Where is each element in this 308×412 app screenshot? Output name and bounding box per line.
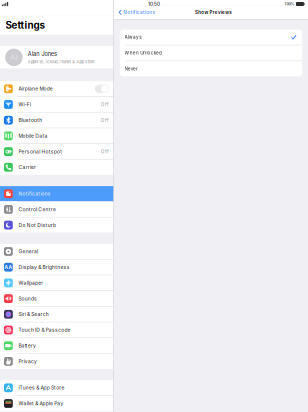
staticText: Carrier [18, 164, 36, 170]
staticText: Privacy [18, 358, 37, 364]
staticText: Off [101, 117, 109, 123]
staticText: Control Centre [18, 206, 56, 212]
staticText: Settings [5, 19, 45, 31]
button[interactable]: Notifications [114, 6, 160, 19]
button[interactable]: Control Centre [0, 202, 113, 217]
staticText: Mobile Data [18, 133, 48, 139]
button[interactable]: Sounds [0, 291, 113, 306]
staticText: Personal Hotspot [18, 149, 62, 155]
staticText: Off [101, 149, 109, 154]
staticText: Do Not Disturb [18, 222, 56, 228]
staticText: Apple ID, iCloud, iTunes & App Store [28, 59, 94, 64]
button[interactable]: Do Not Disturb [0, 217, 113, 233]
staticText: Notifications [123, 9, 155, 15]
staticText: AJ [10, 54, 17, 61]
button[interactable]: Wallet & Apple Pay [0, 396, 113, 411]
button[interactable]: When Unlocked [120, 45, 302, 61]
staticText: Wallpaper [18, 280, 43, 286]
staticText: When Unlocked [125, 50, 162, 56]
staticText: 10:50 [148, 1, 160, 7]
button[interactable]: iTunes & App Store [0, 380, 113, 395]
staticText: Wi-Fi [18, 101, 31, 107]
button[interactable]: Siri & Search [0, 307, 113, 322]
staticText: Sounds [18, 296, 37, 302]
button[interactable]: AJ [0, 46, 113, 69]
button[interactable]: General [0, 244, 113, 259]
staticText: Show Previews [195, 10, 231, 15]
staticText: General [18, 248, 38, 254]
staticText: Display & Brightness [18, 264, 70, 270]
staticText: Bluetooth [18, 117, 42, 123]
staticText: Siri & Search [18, 311, 49, 317]
staticText: Wallet & Apple Pay [18, 400, 63, 406]
button[interactable]: Personal Hotspot [0, 144, 113, 159]
button[interactable]: Notifications [0, 186, 113, 201]
button[interactable]: Airplane Mode [0, 81, 113, 96]
button[interactable]: Bluetooth [0, 113, 113, 128]
button[interactable]: Mobile Data [0, 128, 113, 143]
button[interactable]: Privacy [0, 354, 113, 369]
button[interactable]: Always [120, 29, 302, 45]
button[interactable]: Wallpaper [0, 275, 113, 290]
staticText: Off [101, 102, 109, 107]
staticText: 100% [285, 2, 295, 6]
button[interactable]: Wi-Fi [0, 97, 113, 112]
staticText: Always [125, 34, 141, 40]
button[interactable]: Never [120, 61, 302, 76]
staticText: Battery [18, 343, 36, 349]
staticText: Alan Jones [28, 50, 57, 57]
button[interactable]: Touch ID & Passcode [0, 322, 113, 338]
staticText: Never [125, 66, 138, 72]
staticText: iTunes & App Store [18, 385, 64, 391]
button[interactable]: AA [0, 260, 113, 275]
staticText: AA [4, 264, 12, 270]
button[interactable]: Carrier [0, 160, 113, 175]
staticText: Notifications [18, 191, 51, 197]
staticText: Touch ID & Passcode [18, 327, 71, 333]
staticText: Airplane Mode [18, 86, 53, 92]
button[interactable]: Battery [0, 338, 113, 353]
